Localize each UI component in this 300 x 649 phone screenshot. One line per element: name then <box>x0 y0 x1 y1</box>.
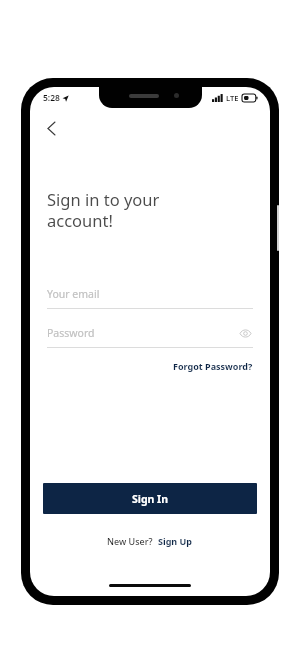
staticText: Sign In <box>132 492 169 506</box>
staticText: Password <box>47 326 95 340</box>
button[interactable]: Forgot Password? <box>173 358 253 374</box>
staticText: 5:28 <box>43 92 60 104</box>
button[interactable]: Sign Up <box>158 533 193 549</box>
staticText: Sign Up <box>158 535 193 547</box>
staticText: Forgot Password? <box>173 360 253 372</box>
staticText: LTE <box>226 93 239 103</box>
button[interactable]: Back <box>38 115 64 141</box>
button[interactable]: Password <box>47 323 253 348</box>
other: Battery <box>242 94 258 102</box>
other: Cellular signal <box>212 94 223 102</box>
button[interactable]: Sign In <box>43 483 257 514</box>
button[interactable]: Your email <box>47 284 253 309</box>
staticText: Sign in to your account! <box>47 188 160 232</box>
staticText: Your email <box>47 287 100 301</box>
button[interactable]: Show password <box>237 325 253 341</box>
staticText: New User? <box>107 535 153 547</box>
